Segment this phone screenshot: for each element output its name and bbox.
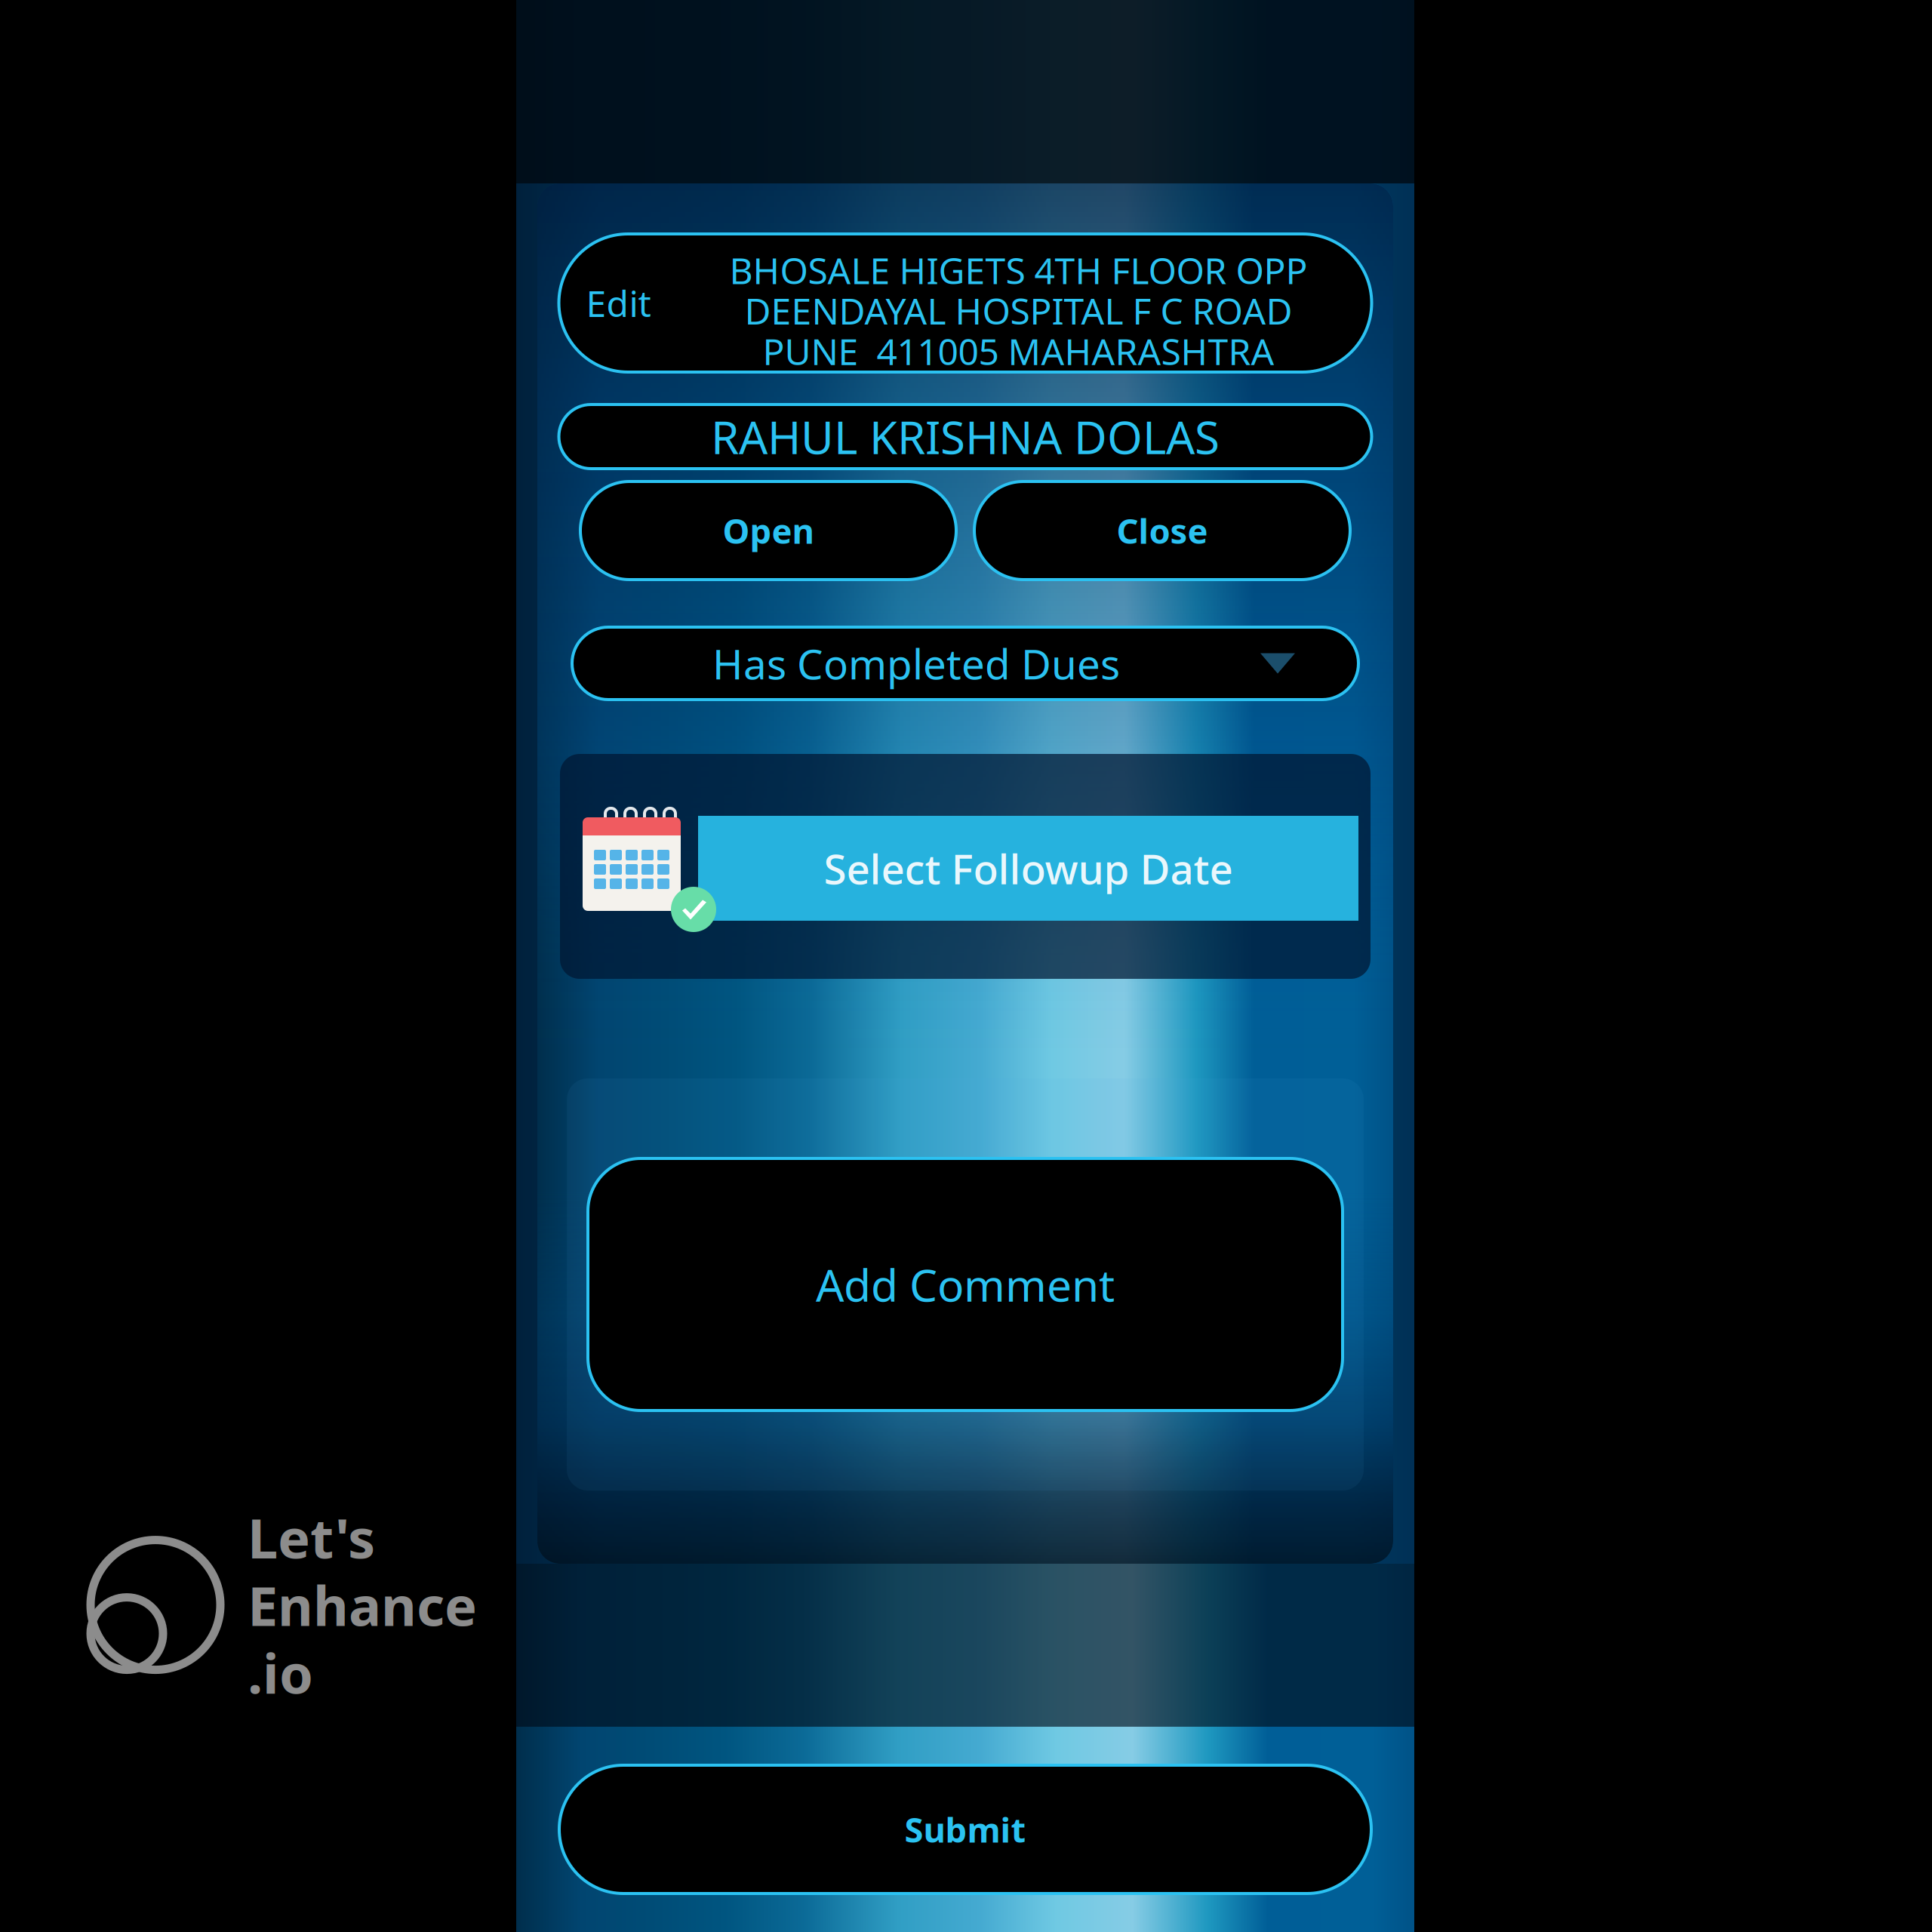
staticText: RAHUL KRISHNA DOLAS: [711, 407, 1220, 467]
staticText: Close: [1117, 508, 1208, 553]
button[interactable]: Open: [580, 481, 956, 580]
button[interactable]: Add Comment: [588, 1158, 1343, 1411]
staticText: Enhance: [248, 1569, 477, 1641]
button[interactable]: Has Completed Dues: [572, 627, 1358, 700]
staticText: BHOSALE HIGETS 4TH FLOOR OPP: [729, 246, 1307, 294]
staticText: DEENDAYAL HOSPITAL F C ROAD: [744, 286, 1292, 335]
staticText: Submit: [904, 1807, 1026, 1852]
staticText: Let's: [248, 1501, 375, 1573]
button[interactable]: Select Followup Date: [698, 816, 1358, 921]
button[interactable]: RAHUL KRISHNA DOLAS: [559, 405, 1372, 469]
staticText: Has Completed Dues: [712, 636, 1120, 691]
staticText: Edit: [586, 279, 651, 327]
staticText: Select Followup Date: [824, 841, 1233, 896]
staticText: PUNE 411005 MAHARASHTRA: [763, 327, 1274, 375]
staticText: Add Comment: [816, 1255, 1115, 1314]
button[interactable]: Submit: [559, 1765, 1371, 1894]
button[interactable]: Close: [974, 481, 1350, 580]
staticText: Open: [723, 508, 814, 553]
staticText: .io: [248, 1636, 313, 1709]
button[interactable]: Edit: [559, 234, 1372, 372]
